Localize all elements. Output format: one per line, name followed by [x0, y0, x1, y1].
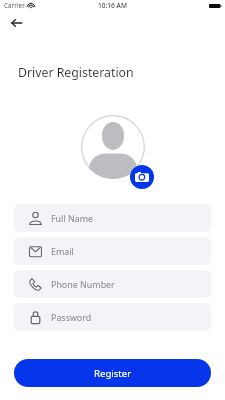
staticText: Register — [94, 367, 132, 380]
button[interactable]: Register — [14, 359, 211, 387]
button[interactable]: Change photo — [130, 165, 154, 189]
staticText: Driver Registeration — [18, 64, 134, 81]
staticText: Password — [51, 311, 92, 323]
staticText: 10:16 AM — [98, 1, 127, 10]
staticText: Email — [51, 245, 74, 257]
button[interactable]: Back — [3, 10, 29, 36]
button[interactable]: Profile photo — [81, 115, 145, 179]
button[interactable]: Full Name — [14, 204, 211, 232]
staticText: Phone Number — [51, 278, 115, 290]
button[interactable]: Phone Number — [14, 270, 211, 298]
staticText: Carrier — [4, 1, 25, 10]
staticText: Full Name — [51, 212, 94, 224]
button[interactable]: Password — [14, 303, 211, 331]
button[interactable]: Email — [14, 237, 211, 265]
